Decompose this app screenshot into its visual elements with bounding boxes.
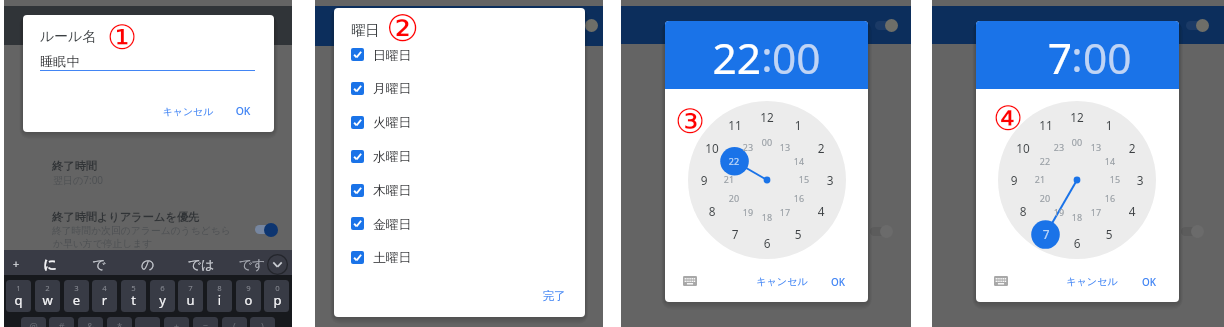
staticText: 17 [773, 206, 797, 220]
staticText: 00 [1083, 29, 1173, 97]
staticText: 12 [752, 109, 782, 128]
staticText: 12 [1062, 109, 1092, 128]
button[interactable] [976, 21, 1179, 302]
staticText: OK [818, 275, 858, 291]
button[interactable] [250, 317, 275, 327]
button[interactable]: Switch to text input [994, 276, 1008, 286]
staticText: 4 [92, 283, 117, 295]
staticText: 14 [787, 155, 811, 169]
staticText: : [754, 27, 780, 95]
staticText: 7 [720, 226, 750, 245]
button[interactable] [341, 40, 556, 70]
staticText: 5 [1094, 226, 1124, 245]
staticText: 9 [236, 283, 261, 295]
button[interactable] [135, 317, 160, 327]
staticText: 20 [722, 192, 746, 206]
staticText: 曜日 [351, 21, 711, 44]
button[interactable]: Hide suggestions [267, 254, 288, 275]
button[interactable]: Selected time [976, 21, 1179, 89]
staticText: e [64, 291, 89, 312]
button[interactable] [341, 243, 556, 273]
staticText: 8 [697, 203, 727, 222]
button[interactable] [49, 317, 74, 327]
staticText: 13 [773, 141, 797, 155]
staticText: 9 [999, 172, 1029, 191]
staticText: 15 [1103, 173, 1127, 187]
button[interactable] [6, 280, 31, 312]
staticText: キャンセル [752, 275, 812, 291]
staticText: @ [21, 320, 46, 327]
staticText: & [78, 320, 103, 327]
button[interactable]: Clock face [688, 101, 846, 259]
button[interactable] [193, 317, 218, 327]
staticText: 21 [717, 173, 741, 187]
button[interactable] [121, 280, 146, 312]
button[interactable] [341, 209, 556, 239]
button[interactable] [78, 317, 103, 327]
staticText: 睡眠中 [40, 53, 400, 74]
button[interactable] [222, 317, 247, 327]
staticText: 10 [1008, 140, 1038, 159]
button[interactable] [35, 280, 60, 312]
staticText: 00 [1065, 136, 1089, 150]
staticText: 11 [720, 117, 750, 136]
staticText: 16 [1098, 192, 1122, 206]
button[interactable] [164, 317, 189, 327]
button[interactable] [341, 74, 556, 104]
staticText: 8 [207, 283, 232, 295]
staticText: ( [222, 320, 247, 327]
staticText: 6 [1062, 235, 1092, 254]
staticText: ) [250, 320, 275, 327]
staticText: 18 [1065, 211, 1089, 225]
staticText: 19 [736, 206, 760, 220]
staticText: 14 [1098, 155, 1122, 169]
staticText: - [136, 320, 161, 327]
staticText: = [193, 320, 218, 327]
button[interactable] [178, 280, 203, 312]
button[interactable] [64, 280, 89, 312]
staticText: 金曜日 [373, 217, 733, 237]
button[interactable]: Clock face [998, 101, 1156, 259]
staticText: 7 [1031, 226, 1061, 245]
button[interactable] [23, 15, 274, 132]
button[interactable] [665, 21, 868, 302]
staticText: キャンセル [1062, 275, 1122, 291]
staticText: 23 [736, 141, 760, 155]
staticText: 22 [722, 155, 746, 169]
staticText: の [126, 256, 170, 277]
staticText: 終了時間 [52, 159, 412, 177]
button[interactable] [107, 317, 132, 327]
staticText: 21 [1028, 173, 1052, 187]
staticText: ③ [663, 102, 717, 156]
staticText: p [265, 291, 290, 312]
staticText: 翌日の7:00 [53, 173, 413, 189]
staticText: 7 [982, 29, 1072, 97]
staticText: q [6, 291, 31, 312]
staticText: u [178, 291, 203, 312]
staticText: 10 [697, 140, 727, 159]
staticText: 7 [178, 283, 203, 295]
button[interactable] [92, 280, 117, 312]
staticText: で [77, 256, 121, 277]
staticText: 終了時間か次回のアラームのうちどちら [52, 225, 412, 241]
button[interactable] [150, 280, 175, 312]
button[interactable]: Switch to text input [683, 276, 697, 286]
button[interactable] [334, 8, 585, 317]
button[interactable] [21, 317, 46, 327]
staticText: 終了時間よりアラームを優先 [52, 210, 412, 228]
staticText: 2 [35, 283, 60, 295]
button[interactable] [341, 107, 556, 137]
button[interactable] [264, 280, 289, 312]
staticText: 4 [1117, 203, 1147, 222]
button[interactable] [207, 280, 232, 312]
staticText: 3 [815, 172, 845, 191]
button[interactable] [341, 141, 556, 171]
staticText: 完了 [534, 289, 574, 308]
staticText: ① [95, 18, 149, 72]
staticText: では [179, 256, 223, 277]
button[interactable] [236, 280, 261, 312]
staticText: + [0, 256, 38, 274]
button[interactable] [341, 175, 556, 205]
staticText: 8 [1008, 203, 1038, 222]
button[interactable]: Selected time [665, 21, 868, 89]
